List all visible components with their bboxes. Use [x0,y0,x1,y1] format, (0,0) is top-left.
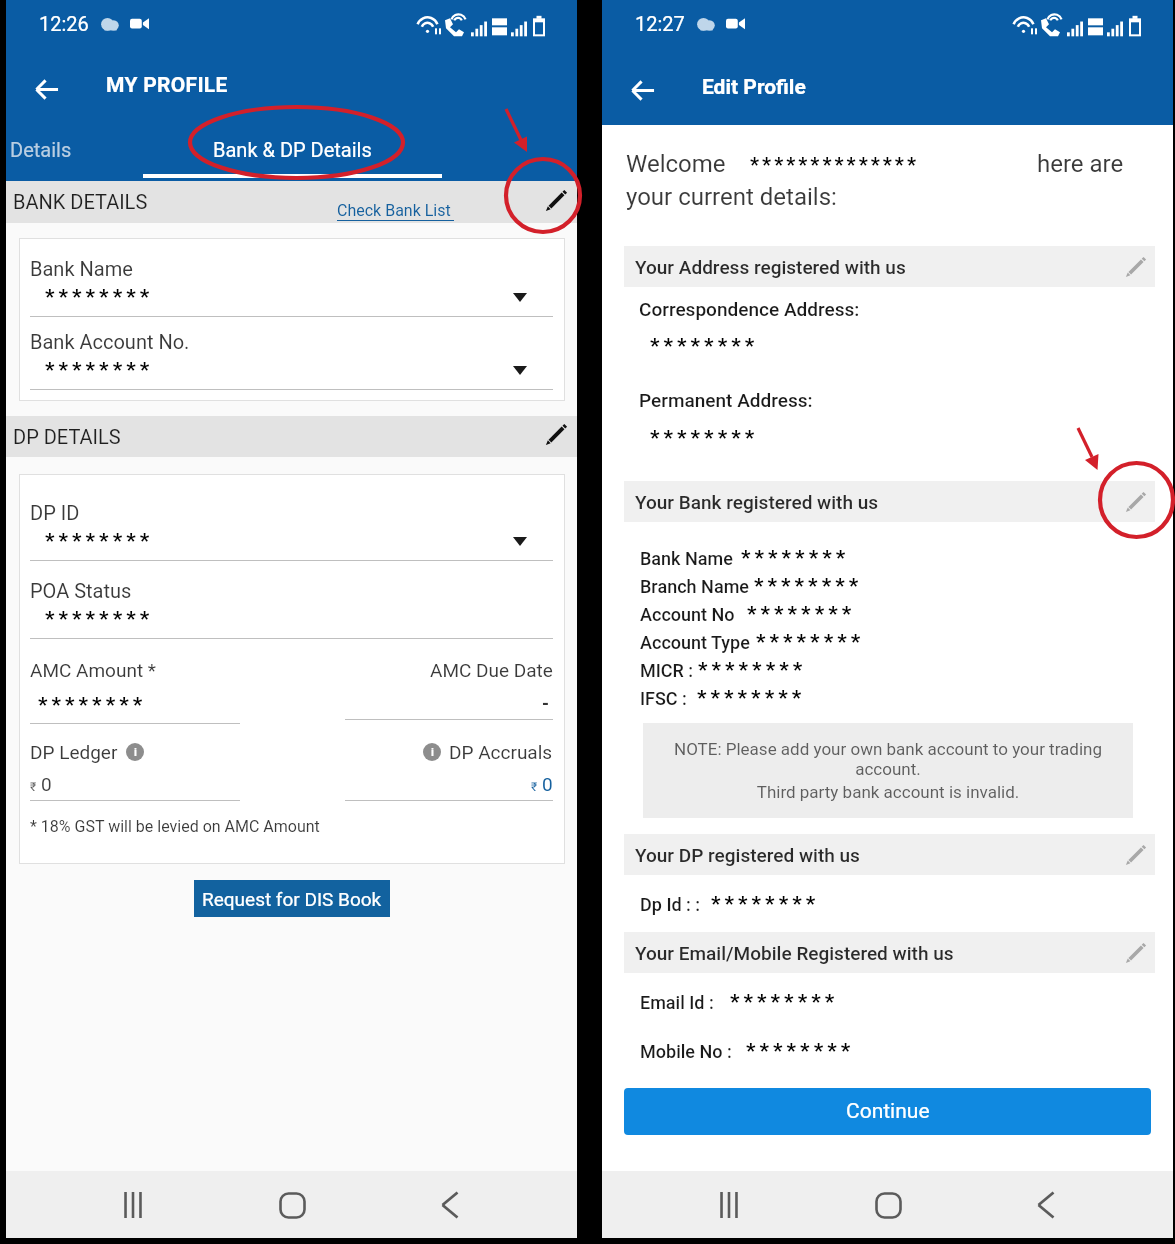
button[interactable]: Edit Your DP registered with us [1125,844,1147,866]
staticText: ******** [45,607,154,632]
button[interactable]: Edit Your Address registered with us [1125,256,1147,278]
staticText: POA Status [30,579,132,602]
button[interactable]: Back [419,1174,481,1236]
staticText: ******** [698,658,807,683]
staticText: Bank & DP Details [213,138,372,161]
staticText: Request for DIS Book [202,888,382,910]
staticText: 12:26 [39,12,89,35]
staticText: Bank Name [640,548,733,569]
staticText: ******** [747,602,856,627]
staticText: i [134,746,137,759]
button[interactable]: Request for DIS Book [194,880,390,917]
staticText: Bank Account No. [30,330,190,353]
staticText: ******** [45,529,154,554]
staticText: MY PROFILE [106,73,228,98]
staticText: Your Address registered with us [635,256,906,278]
staticText: ******** [45,285,154,310]
staticText: i [431,746,434,759]
staticText: Correspondence Address: [639,298,1173,320]
staticText: ******** [38,693,147,718]
button[interactable]: Recents [102,1174,164,1236]
staticText: ******** [746,1039,855,1064]
staticText: Edit Profile [702,75,806,100]
staticText: Welcome [626,150,726,178]
staticText: DP DETAILS [13,425,121,448]
staticText: NOTE: Please add your own bank account t… [657,739,1119,759]
staticText: ******** [650,334,1173,359]
staticText: ******** [756,630,865,655]
staticText: 0 [542,773,553,795]
staticText: Mobile No : [640,1041,732,1062]
button[interactable]: Edit Your Email/Mobile Registered with u… [1125,942,1147,964]
button[interactable]: Recents [698,1174,760,1236]
staticText: AMC Amount * [30,659,157,681]
staticText: 12:27 [635,12,685,35]
staticText: Account Type [640,632,750,653]
staticText: - [542,693,549,714]
staticText: ******** [754,574,863,599]
button[interactable]: Continue [624,1088,1151,1135]
button[interactable]: Edit bank details [545,189,568,212]
staticText: ******** [45,358,154,383]
staticText: AMC Due Date [430,659,553,681]
staticText: Check Bank List [337,201,451,220]
staticText: DP Accruals [449,741,553,763]
button[interactable]: Details [6,124,143,181]
staticText: ₹ [531,780,538,794]
staticText: Branch Name [640,576,749,597]
staticText: Email Id : [640,992,714,1013]
staticText: ******** [711,892,820,917]
staticText: ******** [730,990,839,1015]
button[interactable]: Check Bank List [337,201,454,221]
staticText: here are [1037,150,1124,178]
staticText: Your Bank registered with us [635,491,879,513]
staticText: your current details: [626,183,837,211]
staticText: Dp Id : : [640,894,701,915]
staticText: MICR : [640,660,694,681]
staticText: Bank Name [30,257,133,280]
staticText: BANK DETAILS [13,190,148,213]
staticText: * 18% GST will be levied on AMC Amount [30,817,320,836]
staticText: Permanent Address: [639,389,1173,411]
button[interactable]: Home [261,1174,323,1236]
staticText: ₹ [30,780,37,794]
button[interactable]: Bank & DP Details [143,124,442,181]
staticText: account. [657,759,1119,779]
staticText: ******** [650,426,1173,451]
button[interactable]: Back [1015,1174,1077,1236]
button[interactable]: Home [857,1174,919,1236]
staticText: Continue [846,1099,930,1124]
staticText: Your DP registered with us [635,844,860,866]
staticText: Account No [640,604,735,625]
staticText: ******** [697,686,806,711]
staticText: Details [10,138,72,161]
staticText: ******** [741,546,850,571]
button[interactable]: Back [622,71,666,111]
staticText: ************** [750,153,920,176]
staticText: 0 [41,773,52,795]
staticText: DP Ledger [30,741,118,763]
staticText: Your Email/Mobile Registered with us [635,942,954,964]
button[interactable]: Back [26,70,70,110]
button[interactable]: Edit DP details [545,423,568,446]
staticText: IFSC : [640,688,687,709]
staticText: DP ID [30,501,80,524]
button[interactable]: Edit Your Bank registered with us [1125,491,1147,513]
staticText: Third party bank account is invalid. [657,782,1119,802]
